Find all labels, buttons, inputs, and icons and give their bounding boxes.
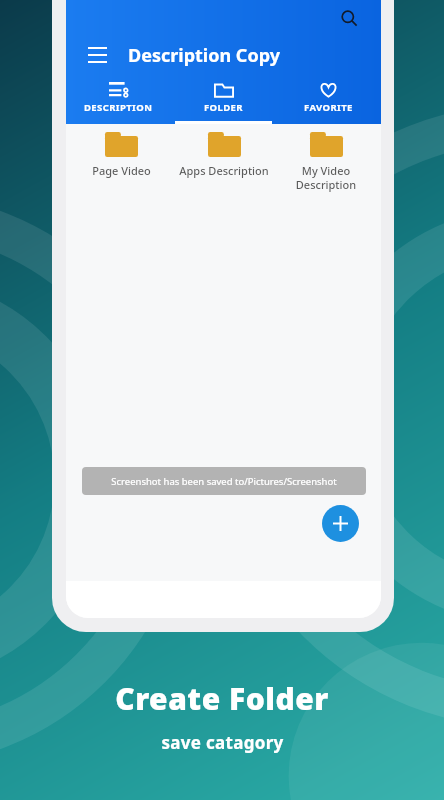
staticText: DESCRIPTION <box>84 101 153 114</box>
staticText: Apps Description <box>179 163 269 178</box>
button[interactable]: My Video Description <box>277 132 375 192</box>
staticText: Screenshot has been saved to/Pictures/Sc… <box>111 475 337 488</box>
button[interactable]: Open navigation menu <box>80 38 114 72</box>
staticText: Page Video <box>92 163 151 178</box>
staticText: Create Folder <box>115 678 329 719</box>
button[interactable]: FOLDER <box>171 76 276 124</box>
button[interactable]: DESCRIPTION <box>66 76 171 124</box>
button[interactable]: Create new folder <box>322 505 359 542</box>
button[interactable]: Page Video <box>72 132 171 178</box>
button[interactable]: FAVORITE <box>276 76 381 124</box>
staticText: FOLDER <box>204 101 243 114</box>
staticText: FAVORITE <box>304 101 353 114</box>
button[interactable]: Search <box>333 2 365 34</box>
staticText: Description Copy <box>128 43 280 68</box>
button[interactable]: Apps Description <box>175 132 273 178</box>
staticText: My Video Description <box>277 163 375 192</box>
staticText: save catagory <box>161 731 284 754</box>
